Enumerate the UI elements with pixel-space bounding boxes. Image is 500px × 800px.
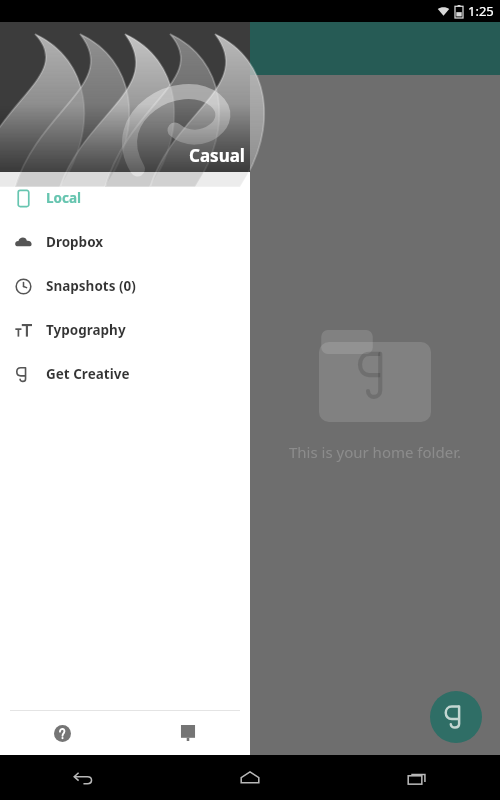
staticText: 1:25 — [468, 2, 494, 20]
staticText: Snapshots (0) — [46, 277, 136, 295]
button[interactable]: Snapshots (0) — [0, 264, 250, 308]
button[interactable]: Local — [0, 176, 250, 220]
staticText: This is your home folder. — [289, 442, 461, 462]
button[interactable]: Recents — [333, 755, 500, 800]
button[interactable]: Get Creative — [0, 352, 250, 396]
button[interactable]: Typography — [0, 308, 250, 352]
button[interactable]: Back — [0, 755, 166, 800]
staticText: Typography — [46, 321, 126, 339]
staticText: Get Creative — [46, 365, 130, 383]
staticText: Dropbox — [46, 233, 104, 251]
button[interactable]: Help — [0, 711, 125, 755]
button[interactable]: New document — [430, 691, 482, 743]
staticText: Local — [46, 189, 82, 207]
button[interactable]: Dropbox — [0, 220, 250, 264]
staticText: Casual — [189, 144, 245, 167]
button[interactable]: Library — [125, 711, 250, 755]
button[interactable]: Home — [166, 755, 333, 800]
